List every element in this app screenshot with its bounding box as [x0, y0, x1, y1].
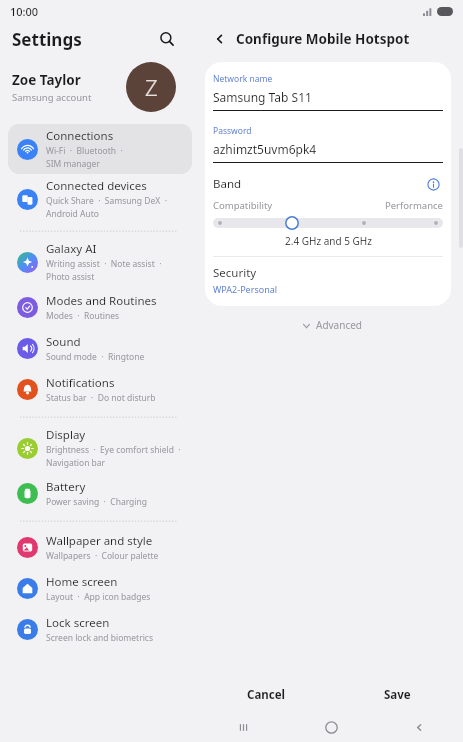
staticText: Wallpapers · Colour palette — [46, 550, 159, 562]
button[interactable]: Back — [375, 712, 463, 742]
staticText: Android Auto — [46, 208, 99, 220]
button[interactable]: Connections — [8, 124, 192, 174]
staticText: Security — [213, 265, 257, 281]
button[interactable]: Save — [331, 680, 463, 710]
button[interactable]: Wallpaper and style — [8, 527, 192, 568]
button[interactable]: Cancel — [200, 680, 331, 710]
button[interactable]: Notifications — [8, 369, 192, 410]
staticText: Modes · Routines — [46, 310, 120, 322]
staticText: Network name — [213, 73, 273, 85]
staticText: Photo assist — [46, 271, 95, 283]
button[interactable]: Modes and Routines — [8, 287, 192, 328]
staticText: Quick Share · Samsung DeX · — [46, 195, 167, 207]
staticText: Writing assist · Note assist · — [46, 258, 162, 270]
staticText: 10:00 — [10, 4, 39, 19]
staticText: Home screen — [46, 574, 118, 590]
staticText: Samsung Tab S11 — [213, 89, 312, 105]
staticText: Settings — [12, 28, 82, 51]
staticText: Wallpaper and style — [46, 533, 153, 549]
staticText: Battery — [46, 479, 86, 495]
staticText: Password — [213, 125, 252, 137]
staticText: Screen lock and biometrics — [46, 632, 153, 644]
button[interactable]: Advanced — [294, 315, 370, 335]
button[interactable]: Battery — [8, 473, 192, 514]
staticText: WPA2-Personal — [213, 283, 278, 295]
staticText: Sound — [46, 334, 81, 350]
button[interactable]: Back — [208, 27, 232, 51]
staticText: Connected devices — [46, 178, 147, 194]
button[interactable]: Home — [287, 712, 375, 742]
button[interactable]: Zoe Taylor — [0, 56, 200, 118]
staticText: Compatibility — [213, 199, 273, 212]
staticText: 2.4 GHz and 5 GHz — [285, 234, 372, 248]
button[interactable]: Search — [154, 26, 180, 52]
button[interactable]: Band information — [423, 174, 443, 194]
staticText: Brightness · Eye comfort shield · — [46, 444, 181, 456]
staticText: Z — [145, 72, 158, 102]
staticText: Notifications — [46, 375, 115, 391]
button[interactable]: Recents — [200, 712, 287, 742]
staticText: Cancel — [247, 687, 285, 703]
staticText: Zoe Taylor — [12, 71, 81, 89]
button[interactable]: Home screen — [8, 568, 192, 609]
button[interactable]: Galaxy AI — [8, 237, 192, 287]
staticText: Band — [213, 176, 242, 192]
staticText: Galaxy AI — [46, 241, 97, 257]
staticText: Display — [46, 427, 86, 443]
button[interactable] — [213, 215, 443, 231]
staticText: Lock screen — [46, 615, 110, 631]
staticText: Performance — [385, 199, 443, 212]
staticText: Navigation bar — [46, 457, 106, 469]
staticText: Save — [384, 687, 411, 703]
staticText: Configure Mobile Hotspot — [236, 30, 410, 48]
staticText: Connections — [46, 128, 114, 144]
button[interactable]: Lock screen — [8, 609, 192, 650]
staticText: Modes and Routines — [46, 293, 157, 309]
staticText: Advanced — [316, 318, 362, 332]
staticText: SIM manager — [46, 158, 100, 170]
staticText: Sound mode · Ringtone — [46, 351, 145, 363]
staticText: Power saving · Charging — [46, 496, 147, 508]
button[interactable]: Sound — [8, 328, 192, 369]
staticText: Wi-Fi · Bluetooth · — [46, 145, 123, 157]
staticText: Layout · App icon badges — [46, 591, 151, 603]
button[interactable]: Display — [8, 423, 192, 473]
button[interactable]: Connected devices — [8, 174, 192, 224]
staticText: azhimzt5uvm6pk4 — [213, 141, 317, 157]
staticText: Status bar · Do not disturb — [46, 392, 156, 404]
staticText: Samsung account — [12, 91, 92, 104]
